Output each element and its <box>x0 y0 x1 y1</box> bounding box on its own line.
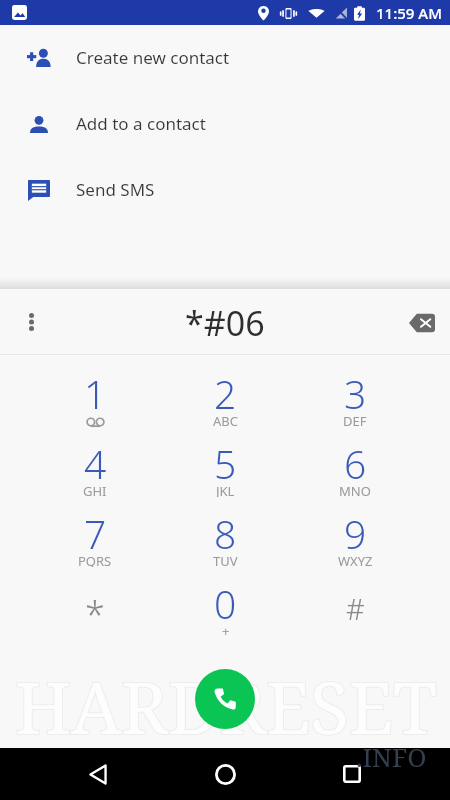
button[interactable]: More options <box>15 306 47 338</box>
staticText: HARDRESET <box>15 658 437 755</box>
button[interactable]: Add to a contact <box>0 90 450 156</box>
button[interactable]: 5 <box>160 435 290 505</box>
staticText: 0 <box>214 577 237 630</box>
staticText: HARDRESET <box>15 658 437 755</box>
staticText: TUV <box>213 552 238 567</box>
staticText: Add to a contact <box>76 112 206 135</box>
staticText: 4 <box>84 437 107 490</box>
staticText: 5 <box>214 437 237 490</box>
staticText: 6 <box>344 437 367 490</box>
button[interactable]: 6 <box>290 435 420 505</box>
button[interactable]: 7 <box>30 505 160 575</box>
staticText: MNO <box>339 482 371 497</box>
button[interactable]: Recents <box>328 750 376 798</box>
button[interactable]: # <box>290 575 420 645</box>
button[interactable]: Backspace <box>402 303 442 343</box>
button[interactable]: 1 <box>30 365 160 435</box>
button[interactable]: 9 <box>290 505 420 575</box>
button[interactable]: Create new contact <box>0 24 450 90</box>
staticText: Create new contact <box>76 46 230 69</box>
staticText: 2 <box>214 367 237 420</box>
staticText: WXYZ <box>338 552 373 567</box>
staticText: Send SMS <box>76 178 155 201</box>
staticText: DEF <box>343 412 367 427</box>
button[interactable]: Home <box>201 750 249 798</box>
staticText: # <box>346 589 365 628</box>
staticText: 11:59 AM <box>376 3 442 23</box>
button[interactable]: 2 <box>160 365 290 435</box>
staticText: PQRS <box>78 552 112 567</box>
button[interactable]: Send SMS <box>0 156 450 222</box>
staticText: 8 <box>214 507 237 560</box>
staticText: 7 <box>84 507 107 560</box>
staticText: GHI <box>83 482 107 497</box>
button[interactable]: 4 <box>30 435 160 505</box>
button[interactable]: Call <box>195 669 255 729</box>
staticText: 9 <box>344 507 367 560</box>
button[interactable]: * <box>30 575 160 645</box>
staticText: + <box>222 622 230 637</box>
staticText: .INFO <box>356 739 427 774</box>
button[interactable]: Back <box>74 750 122 798</box>
staticText: *#06 <box>185 300 265 346</box>
staticText: 1 <box>84 367 107 420</box>
button[interactable]: 8 <box>160 505 290 575</box>
staticText: * <box>85 590 105 639</box>
staticText: 3 <box>344 367 367 420</box>
staticText: JKL <box>216 482 235 497</box>
button[interactable]: 3 <box>290 365 420 435</box>
staticText: ABC <box>213 412 238 427</box>
button[interactable]: 0 <box>160 575 290 645</box>
